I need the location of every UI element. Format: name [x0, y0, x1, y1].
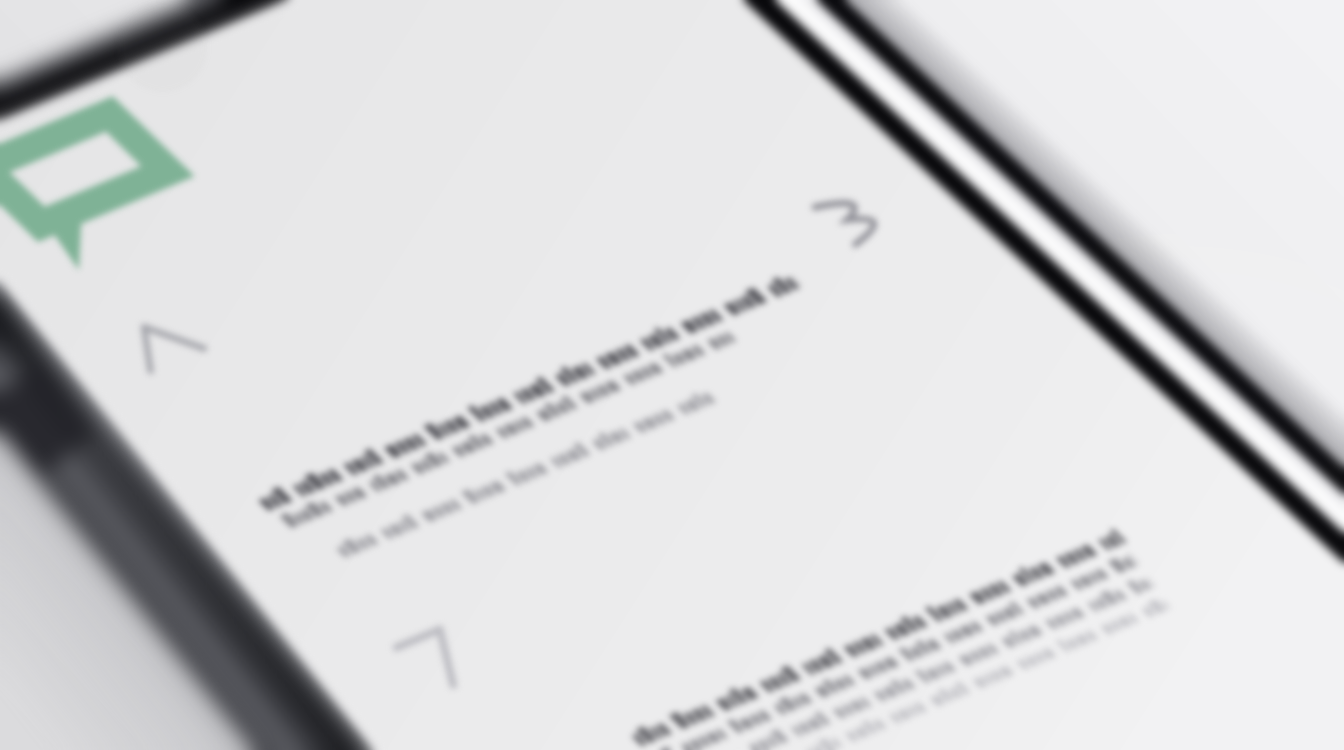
button[interactable]: Chats — [0, 0, 110, 110]
